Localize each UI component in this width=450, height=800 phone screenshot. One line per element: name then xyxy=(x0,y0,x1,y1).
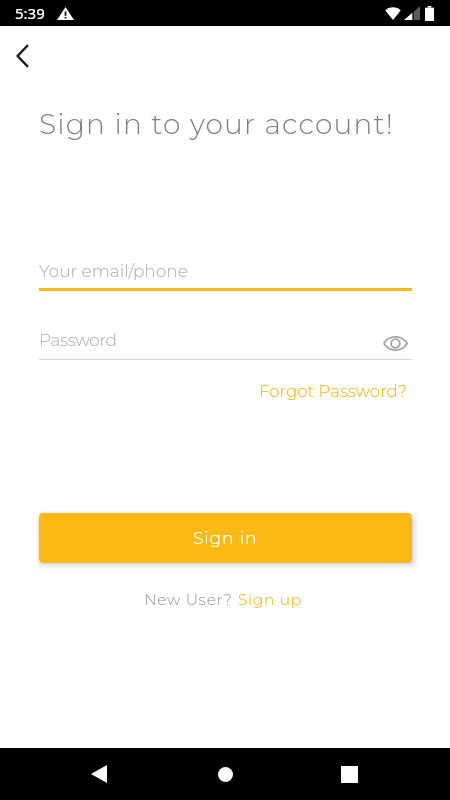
button[interactable]: Sign in xyxy=(39,513,412,563)
button[interactable]: Show password xyxy=(379,327,411,359)
button[interactable]: Sign up xyxy=(238,590,302,609)
button[interactable]: Home xyxy=(205,754,245,794)
button[interactable]: Forgot Password? xyxy=(256,377,405,397)
staticText: Forgot Password? xyxy=(259,381,408,401)
staticText: Password xyxy=(39,330,117,351)
button[interactable]: Back xyxy=(0,33,46,79)
staticText: Sign in to your account! xyxy=(39,107,395,141)
staticText: Sign in xyxy=(193,528,258,549)
button[interactable]: Back xyxy=(79,754,119,794)
staticText: New User? xyxy=(144,590,238,609)
staticText: Your email/phone xyxy=(39,261,188,282)
staticText: 5:39 xyxy=(15,3,45,23)
button[interactable]: Recents xyxy=(329,754,369,794)
